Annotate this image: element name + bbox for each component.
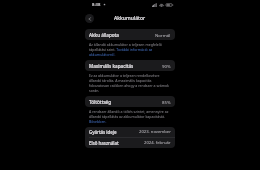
staticText: Az állandó akkumulátor a teljesen megfel… — [89, 42, 171, 57]
staticText: 2023. november — [139, 129, 171, 135]
staticText: 8:38 — [92, 2, 101, 8]
staticText: Gyártás ideje — [89, 129, 117, 135]
button[interactable]: Töltöttség — [85, 96, 175, 107]
staticText: Akku állapota — [89, 32, 119, 38]
staticText: 85% — [162, 99, 171, 105]
staticText: 90% — [162, 63, 171, 69]
staticText: Első használat — [89, 140, 119, 146]
staticText: Töltöttség — [89, 99, 112, 105]
staticText: A rendszer állandó a töltés szintet, ame… — [89, 109, 171, 124]
staticText: Maximális kapacitás — [89, 63, 134, 69]
button[interactable]: Gyártás ideje — [85, 127, 175, 137]
button[interactable]: Maximális kapacitás — [85, 60, 175, 71]
button[interactable]: Első használat — [85, 138, 175, 148]
button[interactable]: Akku állapota — [85, 29, 175, 40]
staticText: Ez az akkumulátor a teljesen rendelkezés… — [89, 73, 171, 93]
staticText: 2024. február — [144, 140, 171, 146]
staticText: Normál — [155, 32, 171, 38]
button[interactable]: Vissza — [85, 14, 94, 23]
staticText: Akkumulátor — [114, 15, 146, 22]
